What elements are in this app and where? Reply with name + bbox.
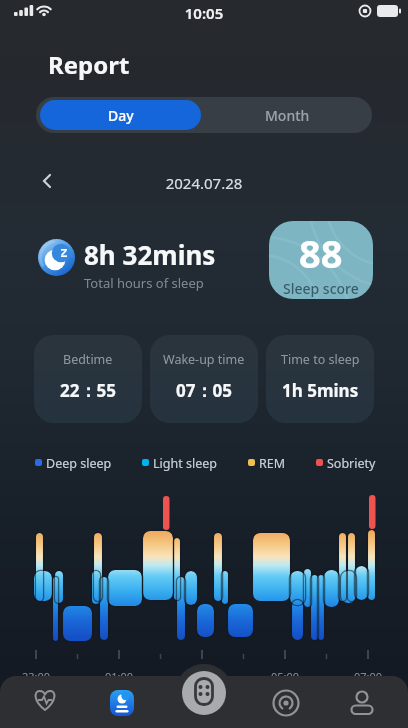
staticText: Deep sleep [46, 455, 112, 472]
staticText: Month [265, 106, 310, 125]
staticText: REM [259, 455, 286, 472]
staticText: Wake-up time [163, 351, 245, 368]
staticText: Bedtime [63, 351, 113, 368]
button[interactable]: Time to sleep [266, 335, 374, 423]
button[interactable] [266, 686, 306, 724]
staticText: 22：55 [60, 379, 116, 402]
button[interactable] [25, 686, 65, 724]
staticText: 01:00 [105, 669, 134, 684]
staticText: Time to sleep [281, 351, 360, 368]
button[interactable]: Wake-up time [150, 335, 258, 423]
button[interactable] [40, 173, 54, 189]
staticText: Total hours of sleep [84, 274, 204, 292]
staticText: 8h 32mins [84, 237, 216, 272]
staticText: 10:05 [0, 3, 408, 23]
button[interactable]: Day [40, 100, 201, 130]
button[interactable] [342, 686, 382, 724]
staticText: Report [48, 48, 130, 81]
staticText: 23:00 [22, 669, 51, 684]
button[interactable] [182, 671, 226, 715]
staticText: 03:00 [188, 669, 217, 684]
staticText: Sleep score [283, 279, 359, 298]
staticText: Day [108, 106, 134, 125]
button[interactable] [102, 686, 142, 724]
button[interactable]: 88 [269, 221, 373, 299]
staticText: 1h 5mins [282, 379, 359, 402]
staticText: 2024.07.28 [0, 173, 408, 193]
staticText: 05:00 [271, 669, 300, 684]
staticText: 88 [299, 227, 343, 279]
staticText: 07：05 [176, 379, 232, 402]
staticText: 07:00 [354, 669, 383, 684]
button[interactable]: Month [207, 100, 368, 130]
staticText: Sobriety [327, 455, 376, 472]
button[interactable]: Bedtime [34, 335, 142, 423]
staticText: Light sleep [153, 455, 217, 472]
